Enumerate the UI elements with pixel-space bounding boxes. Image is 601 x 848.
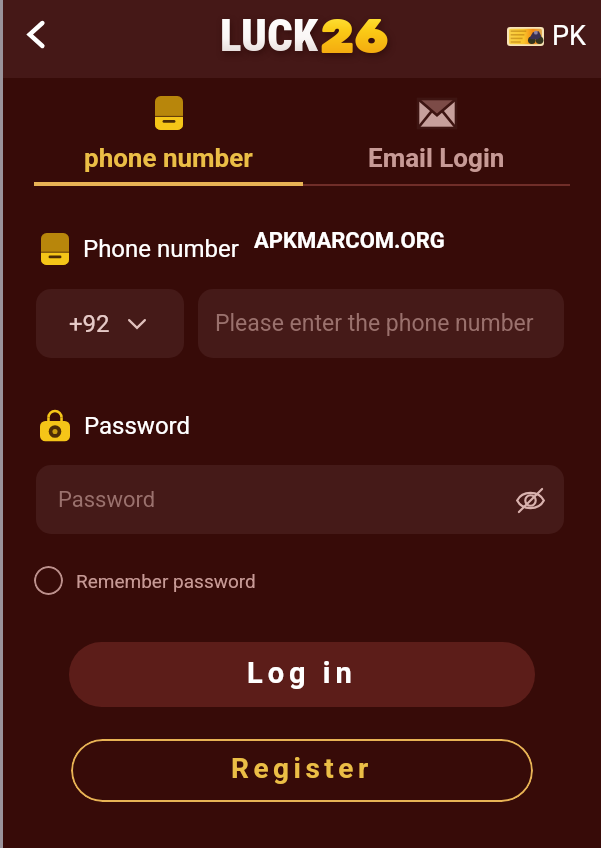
button[interactable]: Password: [36, 465, 564, 534]
staticText: 26: [320, 7, 389, 65]
staticText: Password: [84, 412, 191, 440]
staticText: PK: [552, 20, 586, 52]
staticText: Please enter the phone number: [215, 310, 534, 337]
button[interactable]: PK: [507, 20, 586, 52]
button[interactable]: Show password: [507, 477, 553, 523]
button[interactable]: Register: [71, 739, 533, 802]
button[interactable]: phone number: [34, 90, 303, 185]
button[interactable]: Remember password: [34, 566, 256, 595]
staticText: Remember password: [76, 570, 256, 592]
button[interactable]: Please enter the phone number: [198, 289, 564, 358]
staticText: Password: [58, 487, 156, 513]
staticText: Log in: [247, 656, 357, 690]
button[interactable]: +92: [36, 289, 184, 358]
staticText: phone number: [84, 143, 253, 173]
staticText: Register: [231, 752, 373, 785]
staticText: Email Login: [368, 143, 505, 173]
button[interactable]: Back: [13, 11, 59, 57]
button[interactable]: Log in: [69, 642, 535, 707]
staticText: Phone number: [83, 235, 239, 263]
staticText: APKMARCOM.ORG: [254, 228, 445, 254]
staticText: +92: [69, 310, 110, 338]
button[interactable]: Email Login: [303, 90, 570, 185]
staticText: LUCK: [220, 9, 318, 62]
